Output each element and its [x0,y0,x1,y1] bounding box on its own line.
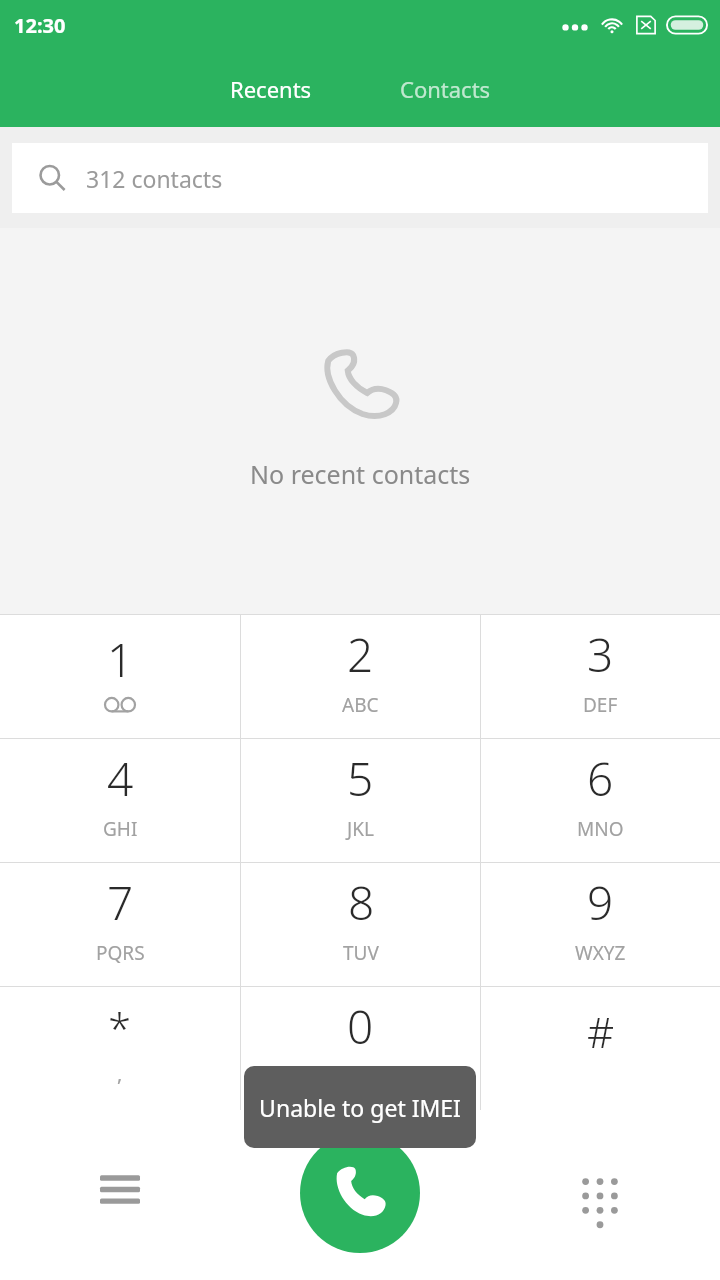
staticText: Contacts [400,74,491,104]
button[interactable]: 1 [0,614,240,738]
button[interactable]: Contacts [370,60,521,118]
button[interactable]: 0 [241,987,480,1110]
button[interactable]: 7 [0,863,240,986]
staticText: ABC [342,692,379,718]
staticText: 3 [587,623,614,686]
staticText: PQRS [96,940,145,966]
staticText: 8 [348,871,375,934]
staticText: 0 [347,995,374,1058]
button[interactable]: 9 [481,863,720,986]
staticText: 7 [107,871,134,934]
staticText: 9 [587,871,614,934]
staticText: JKL [347,816,374,842]
staticText: TUV [343,940,379,966]
button[interactable]: 312 contacts [12,143,708,213]
staticText: , [117,1060,123,1087]
button[interactable]: 8 [241,863,480,986]
staticText: 5 [347,747,374,810]
staticText: 1 [107,628,134,691]
staticText: 2 [347,623,374,686]
button[interactable]: 6 [481,739,720,862]
staticText: Recents [230,74,312,104]
staticText: MNO [577,816,624,842]
staticText: # [587,1003,615,1060]
staticText: 12:30 [14,12,66,39]
button[interactable]: * [0,987,240,1110]
button[interactable]: 2 [241,614,480,738]
button[interactable]: # [481,987,720,1110]
staticText: WXYZ [575,940,626,966]
staticText: 4 [107,747,134,810]
staticText: No recent contacts [250,457,471,491]
button[interactable]: 3 [481,614,720,738]
button[interactable]: Dialpad [480,1110,720,1280]
button[interactable]: Recents [200,60,342,118]
staticText: + [355,1064,367,1091]
staticText: 312 contacts [86,163,223,194]
button[interactable]: Menu [0,1110,240,1280]
staticText: Unable to get IMEI [259,1092,461,1123]
staticText: 6 [587,747,614,810]
button[interactable]: Call [300,1133,420,1253]
staticText: GHI [103,816,138,842]
button[interactable]: 4 [0,739,240,862]
staticText: DEF [583,692,618,718]
button[interactable]: 5 [241,739,480,862]
staticText: * [108,999,132,1056]
